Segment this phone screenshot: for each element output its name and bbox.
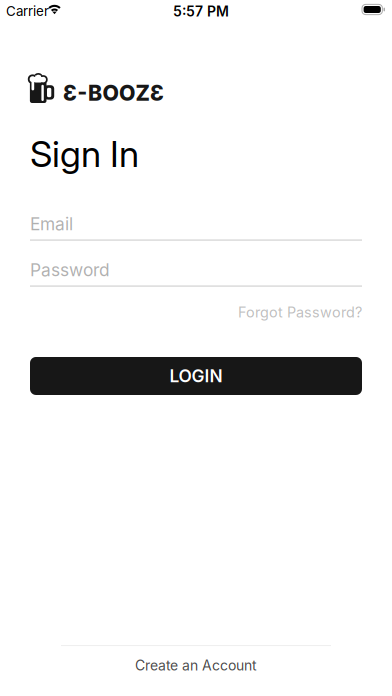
staticText: Email bbox=[30, 214, 73, 235]
staticText: Create an Account bbox=[135, 657, 257, 674]
button[interactable]: Create an Account bbox=[0, 646, 392, 686]
staticText: Sign In bbox=[30, 132, 139, 176]
staticText: LOGIN bbox=[169, 365, 222, 386]
staticText: Password bbox=[30, 260, 110, 281]
staticText: Forgot Password? bbox=[238, 304, 362, 321]
button[interactable]: Forgot Password? bbox=[30, 287, 362, 325]
button[interactable]: LOGIN bbox=[30, 357, 362, 395]
staticText: Carrier bbox=[6, 3, 49, 19]
staticText: Ɛ-BOOZƐ bbox=[63, 80, 164, 106]
staticText: 5:57 PM bbox=[173, 3, 229, 20]
